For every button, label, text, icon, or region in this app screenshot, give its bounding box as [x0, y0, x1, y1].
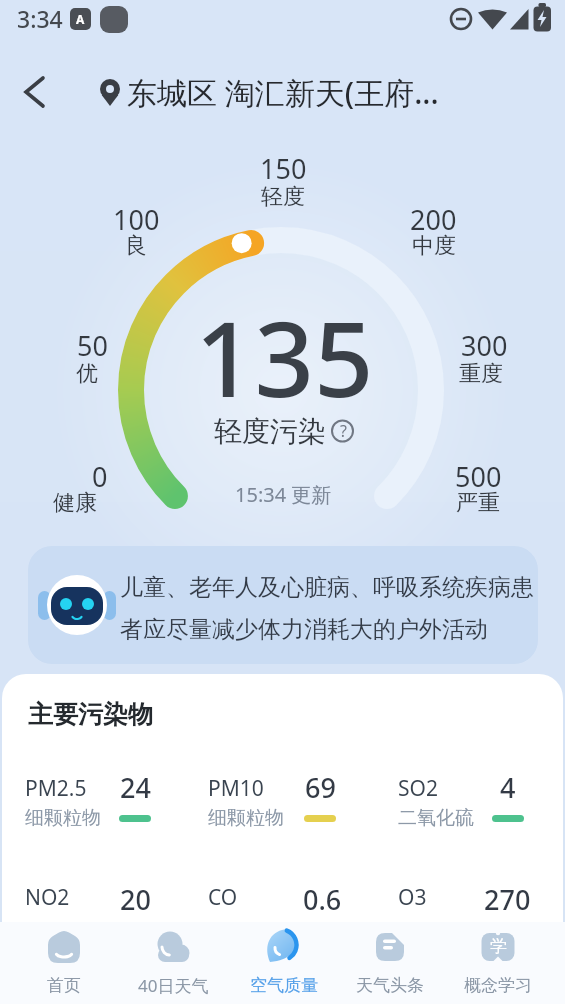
staticText: 15:34 更新 — [235, 481, 332, 508]
staticText: 细颗粒物 — [25, 806, 101, 830]
staticText: 0.6 — [303, 881, 342, 918]
staticText: 150 — [260, 150, 307, 187]
staticText: 良 — [125, 232, 147, 260]
button[interactable] — [28, 546, 538, 664]
staticText: 学 — [490, 936, 507, 957]
staticText: 空气质量 — [250, 975, 318, 996]
staticText: 严重 — [456, 489, 500, 517]
staticText: O3 — [398, 883, 427, 912]
staticText: 50 — [77, 327, 108, 364]
staticText: 二氧化硫 — [398, 806, 474, 830]
staticText: 4 — [500, 769, 516, 806]
staticText: CO — [208, 883, 238, 912]
staticText: SO2 — [398, 774, 438, 803]
staticText: 0 — [92, 458, 108, 495]
staticText: 中度 — [412, 232, 456, 260]
staticText: 天气头条 — [356, 975, 424, 996]
staticText: 270 — [484, 881, 531, 918]
button[interactable] — [340, 924, 440, 1002]
staticText: 69 — [305, 769, 336, 806]
staticText: 40日天气 — [138, 974, 209, 997]
button[interactable] — [14, 76, 54, 110]
staticText: 20 — [120, 881, 151, 918]
staticText: 100 — [113, 201, 160, 238]
button[interactable] — [234, 924, 334, 1002]
button[interactable] — [14, 924, 114, 1002]
staticText: 500 — [455, 458, 502, 495]
staticText: PM2.5 — [25, 774, 87, 803]
staticText: 健康 — [53, 489, 97, 517]
staticText: 轻度污染 — [214, 414, 326, 449]
staticText: 优 — [76, 360, 98, 388]
staticText: A — [76, 11, 85, 27]
button[interactable] — [123, 924, 223, 1002]
staticText: 首页 — [47, 975, 81, 996]
staticText: 儿童、老年人及心脏病、呼吸系统疾病患 — [120, 573, 534, 602]
staticText: 者应尽量减少体力消耗大的户外活动 — [120, 615, 488, 644]
staticText: 轻度 — [261, 183, 305, 211]
staticText: NO2 — [25, 883, 70, 912]
staticText: 135 — [195, 286, 374, 428]
staticText: PM10 — [208, 774, 264, 803]
staticText: 重度 — [459, 360, 503, 388]
staticText: 300 — [461, 327, 508, 364]
staticText: 细颗粒物 — [208, 806, 284, 830]
staticText: 3:34 — [17, 3, 63, 34]
staticText: 东城区 淘汇新天(王府... — [127, 72, 439, 113]
staticText: 24 — [120, 769, 151, 806]
staticText: 主要污染物 — [28, 699, 153, 730]
staticText: 概念学习 — [464, 975, 532, 996]
button[interactable] — [448, 924, 548, 1002]
staticText: ? — [340, 420, 347, 442]
staticText: 200 — [410, 201, 457, 238]
